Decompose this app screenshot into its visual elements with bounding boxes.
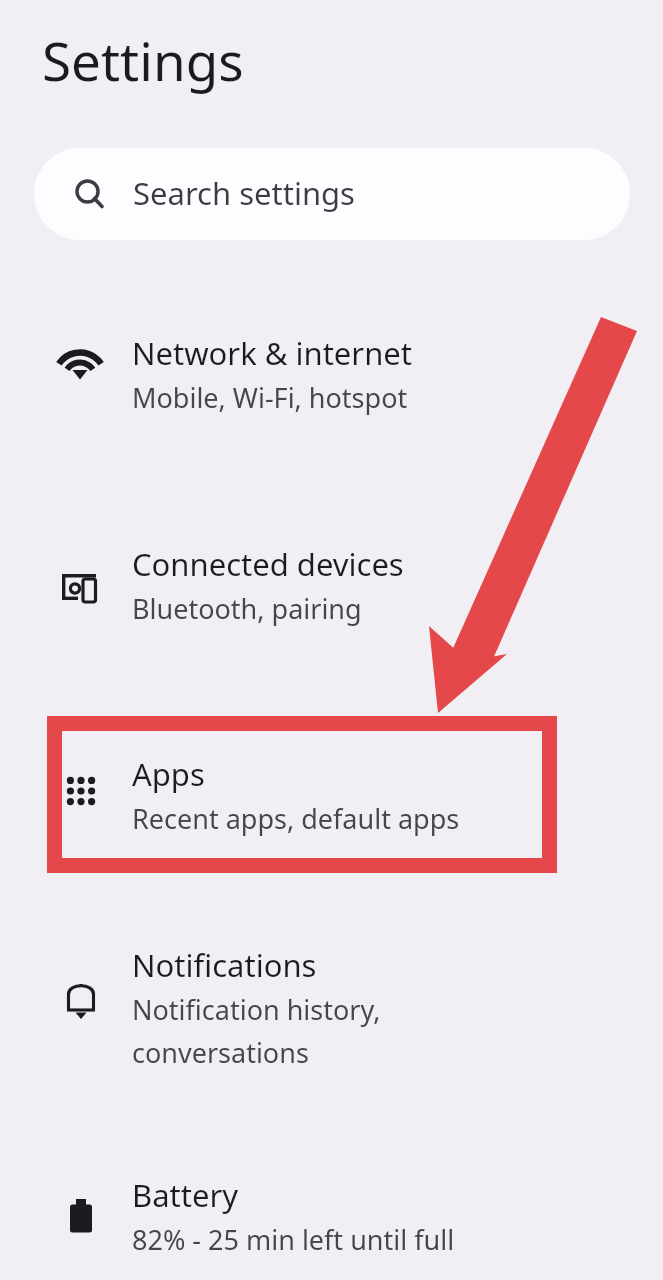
button[interactable] — [0, 522, 663, 623]
button[interactable] — [0, 732, 663, 833]
staticText: conversations — [132, 1034, 309, 1071]
staticText: Search settings — [133, 172, 355, 214]
staticText: Settings — [42, 24, 244, 96]
staticText: Notification history, — [132, 991, 381, 1028]
staticText: Network & internet — [132, 332, 412, 374]
button[interactable]: Search settings — [34, 148, 630, 240]
staticText: Notifications — [132, 944, 317, 986]
staticText: Mobile, Wi-Fi, hotspot — [132, 379, 408, 416]
staticText: Connected devices — [132, 543, 404, 585]
staticText: Recent apps, default apps — [132, 800, 460, 837]
button[interactable] — [0, 1153, 663, 1254]
button[interactable] — [0, 311, 663, 412]
staticText: Battery — [132, 1174, 239, 1216]
button[interactable] — [0, 923, 663, 1063]
staticText: Apps — [132, 753, 205, 795]
staticText: 82% - 25 min left until full — [132, 1221, 455, 1258]
staticText: Bluetooth, pairing — [132, 590, 362, 627]
